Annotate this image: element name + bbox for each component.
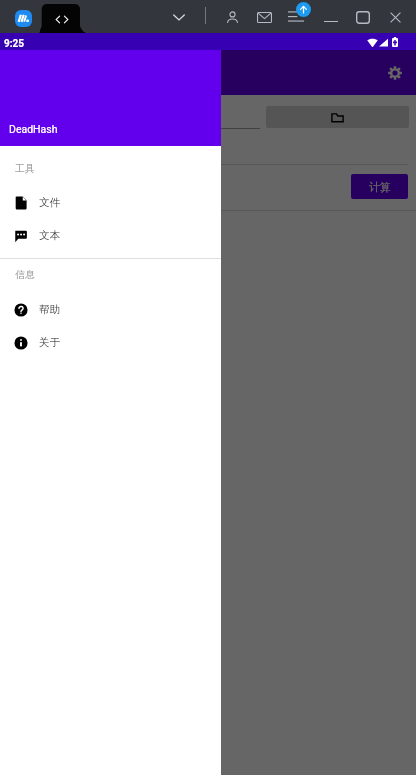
staticText: 信息 <box>15 268 35 281</box>
button[interactable]: Maximize <box>352 7 374 27</box>
staticText: 帮助 <box>39 303 60 316</box>
button[interactable]: App <box>15 10 32 27</box>
staticText: 9:25 <box>4 38 25 50</box>
staticText: 计算 <box>369 180 391 194</box>
button[interactable]: 文件 <box>0 186 221 219</box>
button[interactable]: Upload <box>296 2 311 17</box>
button[interactable]: Minimize <box>320 11 342 31</box>
button[interactable]: Close <box>384 7 406 27</box>
button[interactable]: 计算 <box>351 174 408 199</box>
button[interactable]: Expand <box>168 7 189 27</box>
staticText: DeadHash <box>9 123 58 135</box>
button[interactable]: Settings <box>381 59 408 86</box>
staticText: 工具 <box>15 162 35 175</box>
button[interactable]: 帮助 <box>0 293 221 326</box>
staticText: 文本 <box>39 229 60 242</box>
button[interactable]: Account <box>222 7 242 27</box>
button[interactable]: Browse file <box>266 106 409 128</box>
button[interactable]: 文本 <box>0 219 221 252</box>
button[interactable]: 关于 <box>0 326 221 359</box>
staticText: 关于 <box>39 336 60 349</box>
staticText: 文件 <box>39 196 60 209</box>
button[interactable]: Code tab <box>36 4 90 33</box>
button[interactable]: Mail <box>254 7 274 27</box>
button[interactable]: Menu <box>286 7 306 27</box>
